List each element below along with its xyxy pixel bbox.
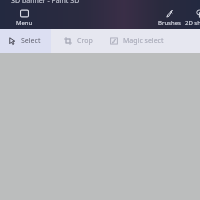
staticText: Select (21, 36, 41, 46)
other: Select tool (8, 37, 16, 45)
staticText: Magic select (123, 36, 164, 46)
staticText: Crop (77, 36, 93, 46)
button[interactable]: Magic select (108, 29, 166, 53)
other: Crop (64, 37, 72, 45)
other: Magic select (110, 37, 118, 45)
staticText: 2D shapes (185, 19, 200, 27)
button[interactable]: Crop (62, 29, 95, 53)
button[interactable]: Menu (13, 8, 36, 28)
button[interactable]: 2D shapes (183, 8, 200, 28)
staticText: 3D banner - Paint 3D (11, 0, 80, 6)
button[interactable]: Brushes (156, 8, 183, 28)
staticText: Menu (16, 19, 33, 27)
button[interactable]: Select tool (0, 29, 51, 53)
staticText: Brushes (158, 19, 181, 27)
